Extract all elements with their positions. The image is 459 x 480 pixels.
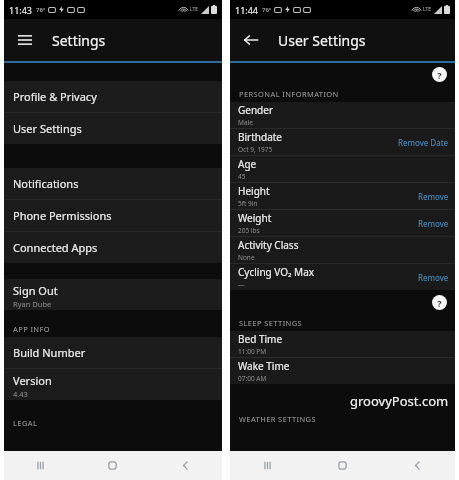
staticText: 11:44	[235, 4, 259, 16]
staticText: Settings	[52, 31, 106, 50]
staticText: ?	[437, 69, 442, 81]
button[interactable]: Recent apps	[230, 451, 305, 480]
button[interactable]: Wake Time	[230, 358, 455, 384]
staticText: Wake Time	[238, 359, 290, 373]
staticText: 11:00 PM	[238, 347, 267, 356]
button[interactable]: Remove	[412, 214, 455, 233]
staticText: LTE	[423, 6, 432, 13]
button[interactable]: Recent apps	[4, 451, 76, 480]
button[interactable]: Help	[432, 67, 447, 82]
button[interactable]: Home	[76, 451, 149, 480]
button[interactable]: Height	[230, 183, 455, 209]
button[interactable]: Activity Class	[230, 237, 455, 263]
button[interactable]: Gender	[230, 102, 455, 128]
button[interactable]: Help	[432, 295, 447, 310]
staticText: Birthdate	[238, 130, 283, 144]
staticText: SLEEP SETTINGS	[239, 318, 303, 328]
button[interactable]: Remove Date	[392, 133, 455, 152]
staticText: Notifications	[13, 176, 79, 191]
staticText: Height	[238, 184, 270, 198]
button[interactable]: Sign Out	[4, 279, 222, 310]
button[interactable]: Cycling VO₂ Max	[230, 264, 455, 290]
staticText: 205 lbs	[238, 226, 260, 235]
staticText: —	[238, 280, 245, 289]
staticText: Connected Apps	[13, 240, 98, 255]
staticText: Version	[13, 373, 52, 388]
staticText: WEATHER SETTINGS	[239, 414, 316, 424]
staticText: Weight	[238, 211, 272, 225]
button[interactable]: Phone Permissions	[4, 200, 222, 231]
button[interactable]: User Settings	[4, 113, 222, 144]
staticText: LTE	[190, 6, 199, 13]
button[interactable]: Connected Apps	[4, 232, 222, 263]
staticText: ?	[437, 297, 442, 309]
staticText: groovyPost.com	[350, 392, 449, 410]
button[interactable]: Home	[305, 451, 380, 480]
staticText: Remove	[418, 191, 449, 202]
staticText: Oct 9, 1975	[238, 145, 273, 154]
staticText: Sign Out	[13, 283, 58, 298]
staticText: 11:43	[9, 4, 33, 16]
staticText: 4.43	[13, 389, 28, 399]
staticText: Phone Permissions	[13, 208, 112, 223]
button[interactable]: Back	[380, 451, 455, 480]
button[interactable]: Version	[4, 369, 222, 400]
button[interactable]: Birthdate	[230, 129, 455, 155]
button[interactable]: Notifications	[4, 168, 222, 199]
button[interactable]: Age	[230, 156, 455, 182]
staticText: User Settings	[13, 121, 82, 136]
button[interactable]: Build Number	[4, 337, 222, 368]
staticText: 07:00 AM	[238, 374, 267, 383]
staticText: None	[238, 253, 255, 262]
staticText: Cycling VO₂ Max	[238, 265, 315, 279]
staticText: Male	[238, 118, 253, 127]
staticText: Ryan Dube	[13, 299, 52, 309]
staticText: 76°	[262, 6, 272, 14]
staticText: Remove	[418, 272, 449, 283]
staticText: Build Number	[13, 345, 86, 360]
staticText: Activity Class	[238, 238, 299, 252]
staticText: Remove	[418, 218, 449, 229]
button[interactable]: Remove	[412, 268, 455, 287]
button[interactable]: Profile & Privacy	[4, 81, 222, 112]
staticText: APP INFO	[13, 324, 51, 334]
button[interactable]: Back	[230, 19, 272, 61]
staticText: 5ft 9in	[238, 199, 258, 208]
button[interactable]: Remove	[412, 187, 455, 206]
staticText: Remove Date	[398, 137, 449, 148]
button[interactable]: Bed Time	[230, 331, 455, 357]
button[interactable]: Weight	[230, 210, 455, 236]
staticText: LEGAL	[13, 418, 38, 428]
staticText: PERSONAL INFORMATION	[239, 89, 339, 99]
staticText: Profile & Privacy	[13, 89, 97, 104]
staticText: 45	[238, 172, 246, 181]
button[interactable]: Back	[149, 451, 222, 480]
staticText: Age	[238, 157, 257, 171]
staticText: User Settings	[278, 31, 366, 50]
button[interactable]: Open navigation menu	[4, 19, 46, 61]
staticText: 76°	[36, 6, 46, 14]
staticText: Bed Time	[238, 332, 283, 346]
staticText: Gender	[238, 103, 274, 117]
